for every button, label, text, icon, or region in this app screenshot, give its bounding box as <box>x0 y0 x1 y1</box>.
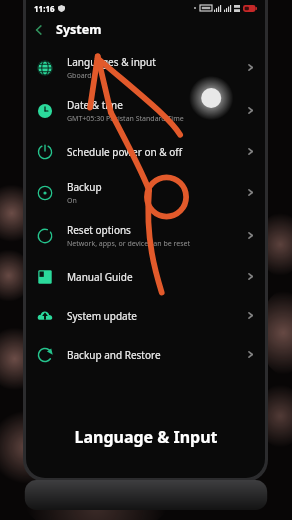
staticText: System update <box>67 309 137 323</box>
button[interactable]: System update <box>26 296 265 335</box>
staticText: Language & Input <box>74 426 218 448</box>
staticText: 11:16 <box>34 3 55 14</box>
button[interactable]: Backup <box>26 171 265 214</box>
staticText: On <box>67 196 77 206</box>
staticText: System <box>56 21 102 38</box>
button[interactable]: Back <box>26 17 51 42</box>
staticText: Network, apps, or device can be reset <box>67 239 191 249</box>
button[interactable]: Languages & input <box>26 46 265 89</box>
staticText: GMT+05:30 Pakistan Standard Time <box>67 114 184 124</box>
staticText: Backup <box>67 180 102 194</box>
button[interactable]: Backup and Restore <box>26 335 265 374</box>
button[interactable]: Date & time <box>26 89 265 132</box>
staticText: Languages & input <box>67 55 156 69</box>
button[interactable]: Reset options <box>26 214 265 257</box>
staticText: Manual Guide <box>67 270 133 284</box>
staticText: Gboard <box>67 71 92 81</box>
staticText: Schedule power on & off <box>67 145 183 159</box>
staticText: Reset options <box>67 223 131 237</box>
staticText: Backup and Restore <box>67 348 161 362</box>
button[interactable]: Manual Guide <box>26 257 265 296</box>
button[interactable]: Schedule power on & off <box>26 132 265 171</box>
staticText: Date & time <box>67 98 123 112</box>
